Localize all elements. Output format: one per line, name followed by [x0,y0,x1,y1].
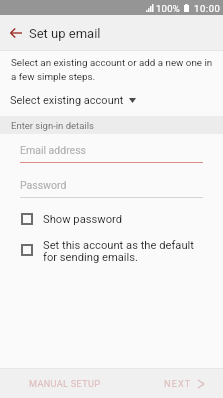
button[interactable]: NEXT [112,369,223,398]
staticText: Email address [20,144,87,156]
staticText: Show password [43,213,123,226]
staticText: Set up email [29,26,101,41]
button[interactable]: Navigate up [0,16,31,49]
button[interactable]: Set this account as the default for send… [0,239,223,264]
button[interactable]: MANUAL SETUP [0,369,112,398]
staticText: Password [20,179,67,191]
staticText: 100% [156,3,180,14]
staticText: 10:00 [194,3,221,14]
button[interactable]: Select existing account [0,90,146,110]
staticText: NEXT [164,378,192,389]
button[interactable]: Show password [0,206,223,232]
staticText: Enter sign-in details [11,120,94,131]
staticText: MANUAL SETUP [29,378,101,389]
staticText: Select existing account [10,94,124,107]
staticText: Select an existing account or add a new … [11,57,219,82]
staticText: Set this account as the default for send… [43,239,194,264]
